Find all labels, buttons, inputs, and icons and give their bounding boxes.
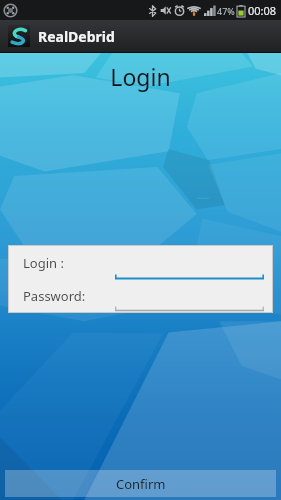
staticText: Confirm [116, 475, 166, 493]
staticText: Password: [23, 287, 115, 305]
staticText: Login [110, 61, 171, 92]
staticText: RealDebrid [38, 27, 115, 46]
button[interactable]: Password: [23, 280, 264, 312]
staticText: 47% [217, 5, 235, 17]
button[interactable]: Confirm [5, 470, 276, 497]
staticText: 00:08 [248, 3, 277, 18]
button[interactable]: Login : [23, 246, 264, 280]
staticText: Login : [23, 254, 115, 272]
